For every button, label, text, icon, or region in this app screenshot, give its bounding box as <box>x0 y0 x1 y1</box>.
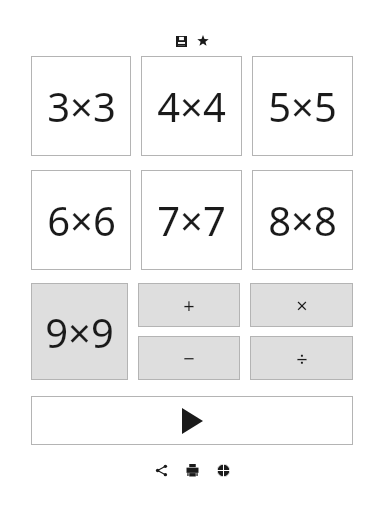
staticText: 8×8 <box>268 193 337 247</box>
staticText: + <box>183 292 195 319</box>
staticText: 9×9 <box>45 305 114 359</box>
button[interactable]: 9×9 <box>31 283 128 380</box>
button[interactable]: − <box>138 336 240 380</box>
staticText: 4×4 <box>157 79 226 133</box>
button[interactable]: 7×7 <box>141 170 242 270</box>
button[interactable]: Save <box>172 32 190 50</box>
staticText: 3×3 <box>47 79 116 133</box>
button[interactable]: Start <box>31 396 353 445</box>
staticText: × <box>296 292 308 319</box>
staticText: − <box>183 345 195 372</box>
button[interactable]: 3×3 <box>31 56 131 156</box>
button[interactable]: 6×6 <box>31 170 131 270</box>
button[interactable]: 8×8 <box>252 170 353 270</box>
staticText: 7×7 <box>157 193 226 247</box>
button[interactable]: Favourite <box>194 32 212 50</box>
button[interactable]: + <box>138 283 240 327</box>
button[interactable]: × <box>250 283 353 327</box>
staticText: 5×5 <box>268 79 337 133</box>
button[interactable]: Language <box>212 459 234 481</box>
staticText: 6×6 <box>47 193 116 247</box>
button[interactable]: Share <box>150 459 172 481</box>
button[interactable]: Print <box>181 459 203 481</box>
button[interactable]: 5×5 <box>252 56 353 156</box>
button[interactable]: 4×4 <box>141 56 242 156</box>
button[interactable]: ÷ <box>250 336 353 380</box>
staticText: ÷ <box>296 345 308 372</box>
